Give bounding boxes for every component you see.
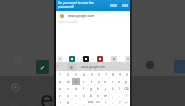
staticText: ↵ — [125, 101, 128, 105]
button[interactable]: ? — [116, 99, 123, 106]
button[interactable]: ! — [56, 99, 64, 106]
button[interactable]: l — [116, 85, 123, 92]
staticText: r — [83, 79, 85, 84]
button[interactable]: c — [72, 92, 80, 99]
staticText: m — [104, 93, 108, 98]
button[interactable]: 1 — [56, 71, 64, 78]
button[interactable]: w — [64, 78, 72, 85]
button[interactable]: 2 — [64, 71, 72, 78]
staticText: v — [83, 93, 85, 98]
button[interactable]: 4 — [80, 71, 88, 78]
staticText: z — [59, 93, 61, 98]
button[interactable]: y — [95, 78, 102, 85]
staticText: 0 — [126, 72, 128, 77]
staticText: y — [98, 79, 100, 84]
staticText: . — [119, 93, 120, 98]
button[interactable]: x — [64, 92, 72, 99]
button[interactable]: u — [102, 78, 109, 85]
button[interactable]: a — [56, 85, 64, 92]
staticText: www. — [88, 99, 95, 106]
staticText: e — [75, 79, 77, 84]
button[interactable]: k — [109, 85, 116, 92]
button[interactable]: o — [116, 78, 123, 85]
button[interactable]: - — [72, 99, 80, 106]
staticText: password? — [58, 5, 74, 9]
staticText: 9 — [119, 72, 121, 77]
button[interactable]: Site shortcut — [57, 56, 63, 62]
button[interactable]: r — [80, 78, 88, 85]
staticText: n — [97, 93, 100, 98]
staticText: s — [67, 86, 69, 91]
button[interactable]: t — [88, 78, 95, 85]
button[interactable]: Site shortcut — [69, 56, 75, 62]
button[interactable]: v — [80, 92, 88, 99]
staticText: , — [112, 93, 113, 98]
staticText: p — [125, 79, 128, 84]
button[interactable]: 0 — [123, 71, 130, 78]
staticText: w — [67, 79, 70, 84]
button[interactable]: 6 — [95, 71, 102, 78]
button[interactable]: www. — [88, 99, 95, 106]
staticText: ! — [60, 100, 61, 105]
staticText: j — [105, 86, 106, 91]
button[interactable]: q — [56, 78, 64, 85]
button[interactable]: : — [109, 99, 116, 106]
staticText: t — [91, 79, 93, 84]
button[interactable]: ⌫ — [123, 85, 130, 92]
button[interactable]: b — [88, 92, 95, 99]
button[interactable]: n — [95, 92, 102, 99]
button[interactable]: _ — [80, 99, 88, 106]
button[interactable]: , — [109, 92, 116, 99]
button[interactable]: Site shortcut — [111, 56, 117, 62]
button[interactable]: i — [109, 78, 116, 85]
staticText: 7 — [105, 72, 107, 77]
staticText: o — [118, 79, 121, 84]
button[interactable]: f — [80, 85, 88, 92]
button[interactable]: .com — [95, 99, 102, 106]
button[interactable]: / — [102, 99, 109, 106]
button[interactable]: / — [123, 92, 130, 99]
button[interactable]: s — [64, 85, 72, 92]
button[interactable]: h — [95, 85, 102, 92]
button[interactable]: g — [88, 85, 95, 92]
staticText: ✔ — [40, 64, 46, 71]
staticText: a — [59, 86, 61, 91]
button[interactable]: Site shortcut — [97, 56, 103, 62]
staticText: ⌫ — [124, 87, 129, 91]
staticText: e — [70, 64, 73, 71]
staticText: : — [112, 100, 113, 105]
staticText: .com — [95, 99, 102, 106]
staticText: 6 — [98, 72, 100, 77]
button[interactable]: Site shortcut — [125, 56, 131, 62]
button[interactable]: z — [56, 92, 64, 99]
button[interactable]: Site shortcut — [83, 56, 89, 62]
button[interactable]: 5 — [88, 71, 95, 78]
button[interactable]: # — [64, 99, 72, 106]
button[interactable]: 3 — [72, 71, 80, 78]
staticText: Do you want to save the — [58, 1, 95, 5]
staticText: c — [75, 93, 77, 98]
button[interactable]: 9 — [116, 71, 123, 78]
staticText: www.google.com — [68, 14, 95, 18]
button[interactable]: 7 — [102, 71, 109, 78]
button[interactable]: www.google.com — [68, 13, 108, 19]
staticText: b — [90, 93, 93, 98]
button[interactable]: . — [116, 92, 123, 99]
staticText: f — [83, 86, 85, 91]
button[interactable]: ↵ — [123, 99, 130, 106]
staticText: _ — [83, 100, 85, 105]
staticText: - — [75, 100, 77, 105]
button[interactable]: m — [102, 92, 109, 99]
button[interactable]: d — [72, 85, 80, 92]
button[interactable]: 8 — [109, 71, 116, 78]
staticText: # — [67, 100, 70, 105]
staticText: k — [112, 86, 114, 91]
staticText: ? — [119, 100, 121, 105]
button[interactable]: e — [72, 78, 80, 85]
staticText: 3 — [75, 72, 77, 77]
button[interactable]: j — [102, 85, 109, 92]
staticText: 5 — [91, 72, 93, 77]
button[interactable]: p — [123, 78, 130, 85]
